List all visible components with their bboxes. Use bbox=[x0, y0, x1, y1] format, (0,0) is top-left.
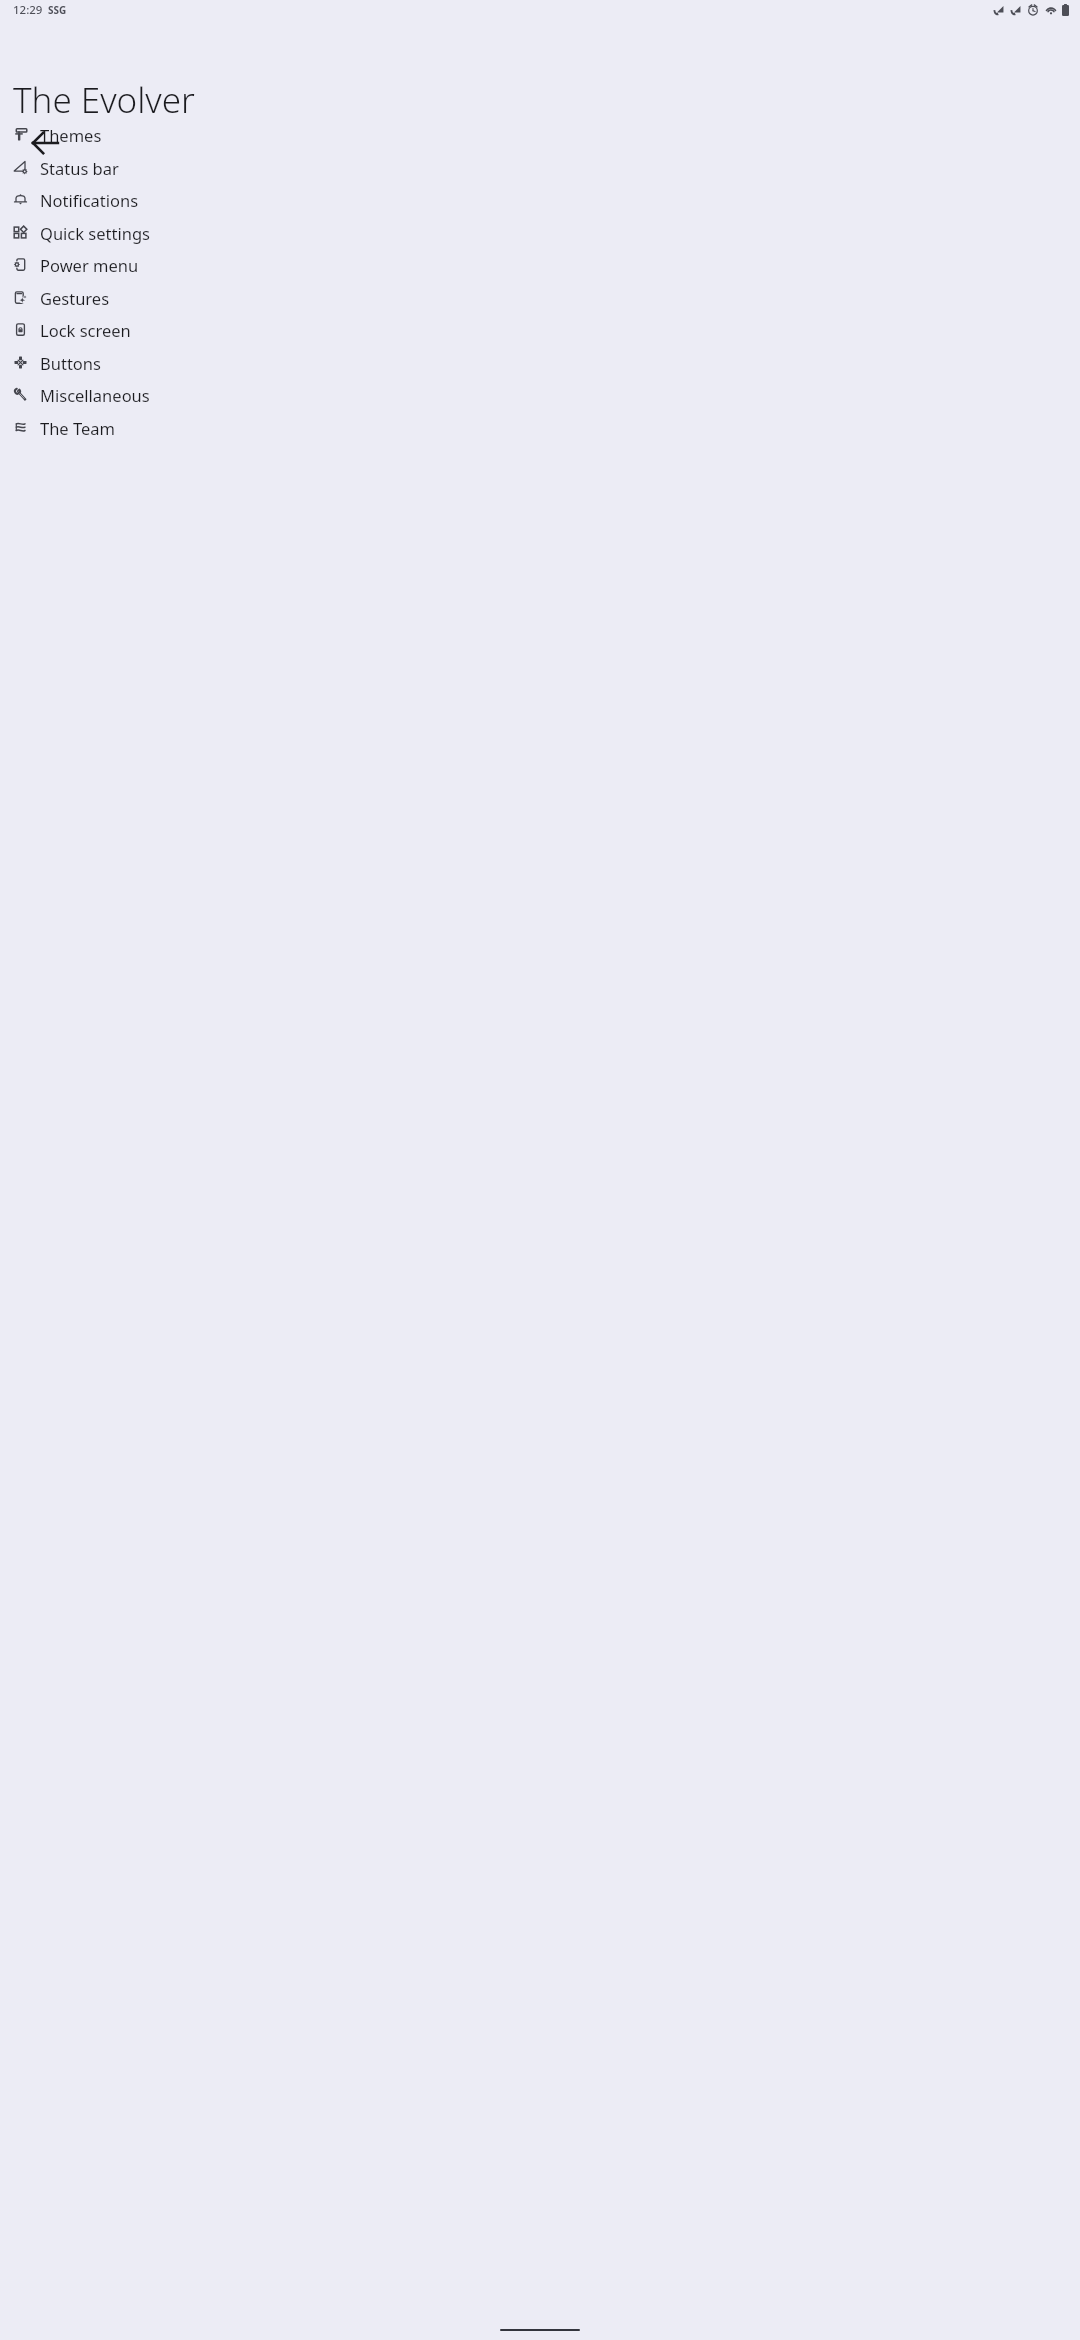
staticText: Status bar bbox=[40, 157, 119, 179]
staticText: Quick settings bbox=[40, 222, 150, 244]
button[interactable]: The Team bbox=[0, 411, 1080, 444]
button[interactable]: Status bar bbox=[0, 151, 1080, 184]
staticText: SSG bbox=[48, 3, 67, 17]
staticText: Buttons bbox=[40, 352, 101, 374]
staticText: Notifications bbox=[40, 189, 139, 211]
staticText: The Team bbox=[40, 417, 115, 439]
staticText: 12:29 bbox=[13, 2, 43, 18]
button[interactable]: Notifications bbox=[0, 183, 1080, 216]
button[interactable]: Back bbox=[19, 117, 71, 169]
button[interactable]: Themes bbox=[0, 118, 1080, 151]
button[interactable]: Power menu bbox=[0, 248, 1080, 281]
staticText: Themes bbox=[40, 124, 102, 146]
button[interactable]: Gestures bbox=[0, 281, 1080, 314]
staticText: Miscellaneous bbox=[40, 384, 150, 406]
staticText: Gestures bbox=[40, 287, 110, 309]
staticText: The Evolver bbox=[13, 76, 195, 124]
button[interactable]: Quick settings bbox=[0, 216, 1080, 249]
staticText: Lock screen bbox=[40, 319, 131, 341]
button[interactable]: Buttons bbox=[0, 346, 1080, 379]
button[interactable]: Lock screen bbox=[0, 313, 1080, 346]
button[interactable]: Miscellaneous bbox=[0, 378, 1080, 411]
staticText: Power menu bbox=[40, 254, 139, 276]
